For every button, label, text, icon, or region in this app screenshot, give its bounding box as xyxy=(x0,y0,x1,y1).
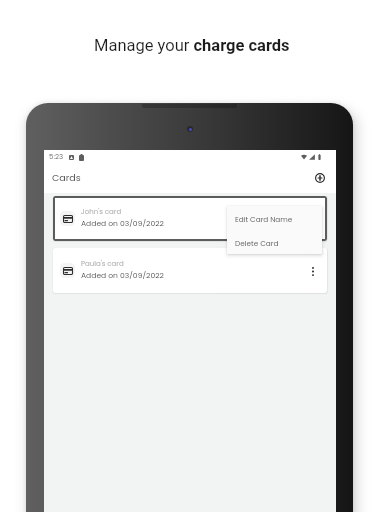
staticText: Cards xyxy=(52,171,81,184)
button[interactable]: Edit Card Name xyxy=(227,206,322,230)
staticText: John's card xyxy=(81,207,122,217)
staticText: Delete Card xyxy=(235,238,279,248)
staticText: Paula's card xyxy=(81,259,124,269)
button[interactable]: Add card xyxy=(311,169,329,187)
button[interactable]: John's card xyxy=(53,196,327,241)
staticText: Added on 03/09/2022 xyxy=(81,270,164,281)
staticText: Added on 03/09/2022 xyxy=(81,218,164,229)
button[interactable]: Paula's card xyxy=(53,248,327,293)
button[interactable]: Delete Card xyxy=(227,230,322,254)
button[interactable]: More options xyxy=(305,263,321,279)
staticText: Manage your charge cards xyxy=(94,36,290,55)
staticText: Edit Card Name xyxy=(235,214,293,224)
staticText: 5:23 xyxy=(49,152,64,162)
